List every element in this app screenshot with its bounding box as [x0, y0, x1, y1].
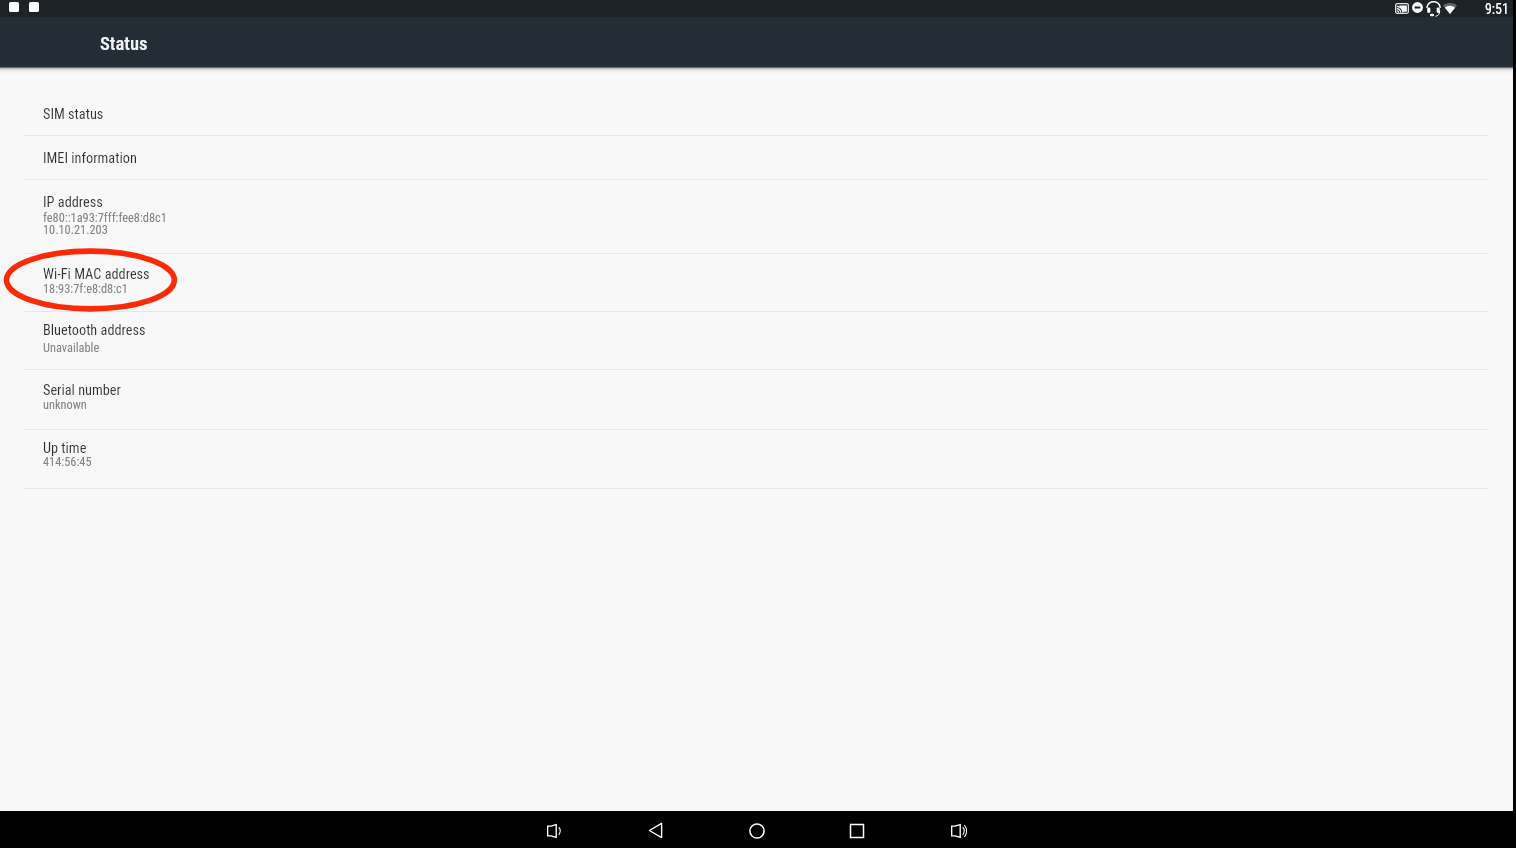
- staticText: Up time: [43, 440, 87, 457]
- staticText: 10.10.21.203: [43, 223, 108, 238]
- staticText: 9:51: [1485, 1, 1509, 17]
- button[interactable]: Recents: [838, 812, 875, 848]
- staticText: Bluetooth address: [43, 322, 146, 339]
- button[interactable]: Volume down: [535, 812, 572, 848]
- staticText: SIM status: [43, 106, 104, 123]
- staticText: 414:56:45: [43, 455, 92, 470]
- staticText: Wi-Fi MAC address: [43, 266, 150, 283]
- staticText: IMEI information: [43, 150, 137, 167]
- staticText: fe80::1a93:7fff:fee8:d8c1: [43, 211, 167, 226]
- staticText: IP address: [43, 194, 103, 211]
- button[interactable]: Home: [738, 812, 775, 848]
- button[interactable]: Serial number: [0, 370, 1513, 430]
- button[interactable]: Bluetooth address: [0, 312, 1513, 370]
- button[interactable]: IMEI information: [0, 136, 1513, 180]
- button[interactable]: Status: [0, 17, 1513, 67]
- staticText: 18:93:7f:e8:d8:c1: [43, 282, 128, 297]
- button[interactable]: Wi-Fi MAC address: [0, 254, 1513, 312]
- button[interactable]: Up time: [0, 430, 1513, 489]
- button[interactable]: SIM status: [0, 92, 1513, 136]
- button[interactable]: Volume up: [940, 812, 977, 848]
- staticText: Serial number: [43, 382, 121, 399]
- staticText: Status: [100, 33, 148, 55]
- staticText: unknown: [43, 398, 87, 413]
- button[interactable]: Back: [637, 812, 674, 848]
- button[interactable]: IP address: [0, 180, 1513, 254]
- staticText: Unavailable: [43, 341, 100, 356]
